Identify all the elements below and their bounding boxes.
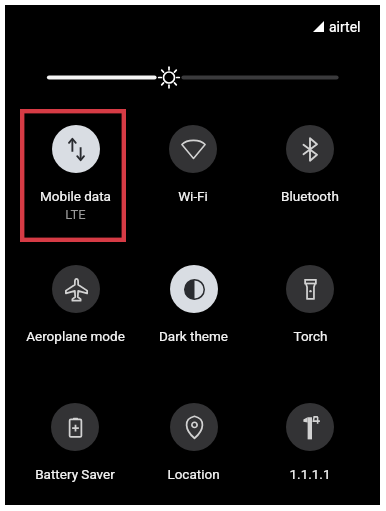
staticText: Wi-Fi — [178, 188, 208, 204]
button[interactable]: Dark theme — [134, 261, 252, 346]
staticText: airtel — [329, 19, 361, 35]
button[interactable]: 1.1.1.1 — [251, 399, 369, 484]
button[interactable]: Mobile data — [16, 121, 134, 226]
button[interactable]: Torch — [251, 261, 369, 346]
staticText: Bluetooth — [281, 188, 339, 204]
button[interactable]: Wi-Fi — [134, 121, 252, 206]
staticText: Battery Saver — [35, 466, 115, 482]
staticText: Torch — [293, 328, 328, 344]
staticText: Mobile data — [40, 188, 111, 204]
staticText: LTE — [65, 207, 86, 222]
button[interactable]: Location — [134, 399, 252, 484]
button[interactable]: Aeroplane mode — [16, 261, 134, 346]
staticText: Dark theme — [159, 328, 228, 344]
staticText: Location — [167, 466, 220, 482]
staticText: Aeroplane mode — [26, 328, 125, 344]
other: Mobile signal strength — [313, 21, 324, 32]
button[interactable]: Brightness — [5, 63, 380, 92]
button[interactable]: Battery Saver — [16, 399, 134, 484]
staticText: 1.1.1.1 — [289, 466, 331, 482]
button[interactable]: Bluetooth — [251, 121, 369, 206]
